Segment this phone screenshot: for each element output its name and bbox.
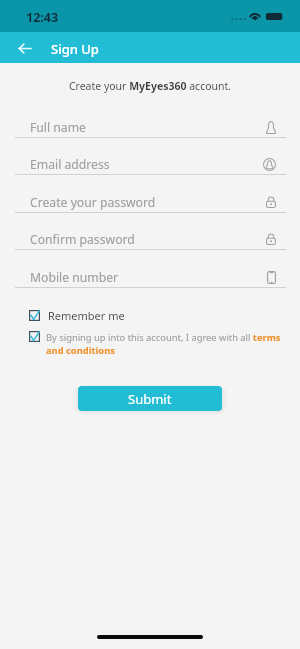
staticText: Confirm password	[30, 231, 135, 248]
button[interactable]: Back	[11, 35, 37, 61]
staticText: Email address	[30, 156, 110, 173]
button[interactable]: Remember me	[29, 308, 125, 323]
staticText: Create your MyEyes360 account.	[0, 79, 300, 93]
staticText: Sign Up	[51, 40, 99, 58]
staticText: 12:43	[26, 9, 59, 26]
staticText: Mobile number	[30, 269, 119, 286]
button[interactable]: By signing up into this account, I agree…	[29, 331, 288, 356]
button[interactable]: Full name	[0, 110, 300, 138]
button[interactable]: Submit	[78, 386, 222, 411]
staticText: Remember me	[48, 308, 125, 323]
staticText: Full name	[30, 119, 86, 136]
staticText: By signing up into this account, I agree…	[46, 331, 288, 356]
button[interactable]: Mobile number	[0, 260, 300, 288]
button[interactable]: Email address	[0, 147, 300, 175]
staticText: Submit	[128, 390, 172, 408]
button[interactable]: Create your password	[0, 185, 300, 213]
staticText: Create your password	[30, 194, 156, 211]
button[interactable]: Confirm password	[0, 222, 300, 250]
